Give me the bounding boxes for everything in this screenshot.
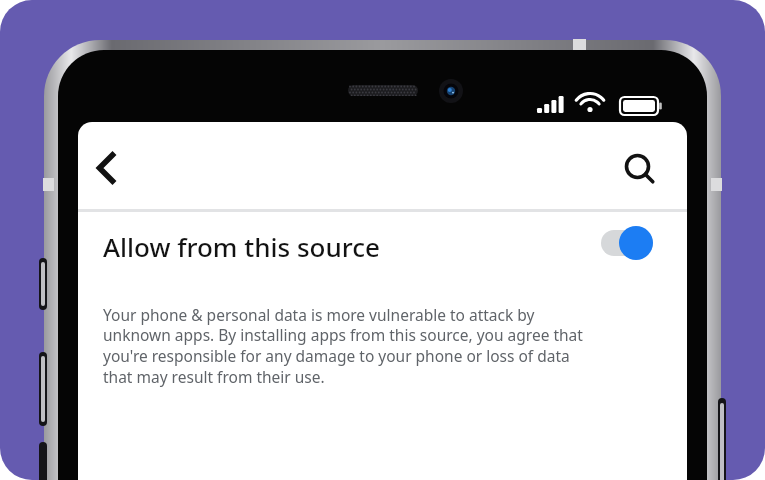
button[interactable]: Back [82,144,130,192]
button[interactable]: Allow from this source [78,212,687,274]
staticText: Allow from this source [103,229,380,264]
button[interactable]: Search [615,144,663,192]
staticText: Your phone & personal data is more vulne… [103,304,593,414]
